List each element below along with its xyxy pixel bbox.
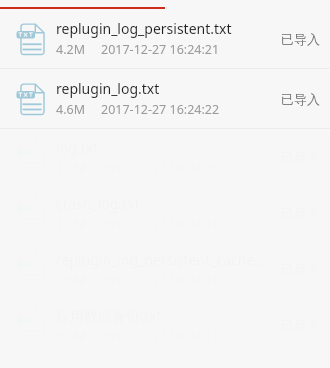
staticText: replugin_log_persistent.txt [56,19,232,38]
staticText: 已导入 [281,91,320,107]
staticText: 2017-12-27 16:24:21 [101,41,220,58]
staticText: 4.6M [56,101,85,118]
staticText: 2017-12-27 16:24:22 [101,101,220,118]
staticText: replugin_log.txt [56,79,160,98]
staticText: 4.2M [56,41,85,58]
other: Text file [16,23,45,55]
button[interactable]: Text file [0,69,330,128]
staticText: 已导入 [281,31,320,47]
other: Text file [16,83,45,115]
other: Loading progress [0,7,330,9]
button[interactable]: Text file [0,9,330,68]
